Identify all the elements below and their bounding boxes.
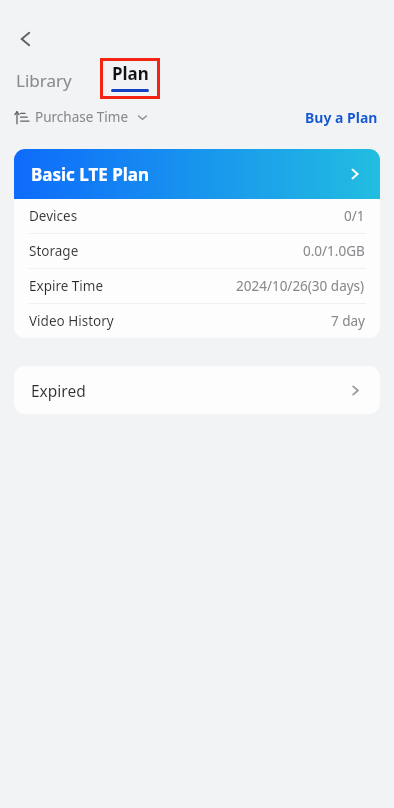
button[interactable]: Back (6, 18, 48, 60)
staticText: Basic LTE Plan (31, 163, 150, 186)
button[interactable]: Plan (100, 58, 160, 99)
staticText: Expire Time (29, 277, 104, 295)
staticText: Video History (29, 312, 114, 330)
staticText: Library (16, 69, 72, 92)
staticText: 2024/10/26(30 days) (236, 277, 365, 295)
staticText: 0/1 (344, 207, 365, 225)
staticText: Buy a Plan (305, 108, 378, 127)
button[interactable]: Purchase Time (12, 105, 150, 129)
button[interactable]: Expired (14, 366, 380, 414)
staticText: Expired (31, 380, 86, 401)
button[interactable]: Devices (14, 199, 380, 233)
staticText: Devices (29, 207, 78, 225)
button[interactable]: Video History (14, 304, 380, 338)
staticText: Plan (112, 62, 149, 85)
staticText: Storage (29, 242, 79, 260)
staticText: Purchase Time (35, 108, 129, 126)
staticText: 0.0/1.0GB (303, 242, 365, 260)
staticText: 7 day (331, 312, 365, 330)
button[interactable]: Buy a Plan (301, 104, 382, 131)
button[interactable]: Basic LTE Plan (14, 149, 380, 199)
button[interactable]: Expire Time (14, 269, 380, 303)
button[interactable]: Storage (14, 234, 380, 268)
button[interactable]: Library (14, 63, 74, 98)
